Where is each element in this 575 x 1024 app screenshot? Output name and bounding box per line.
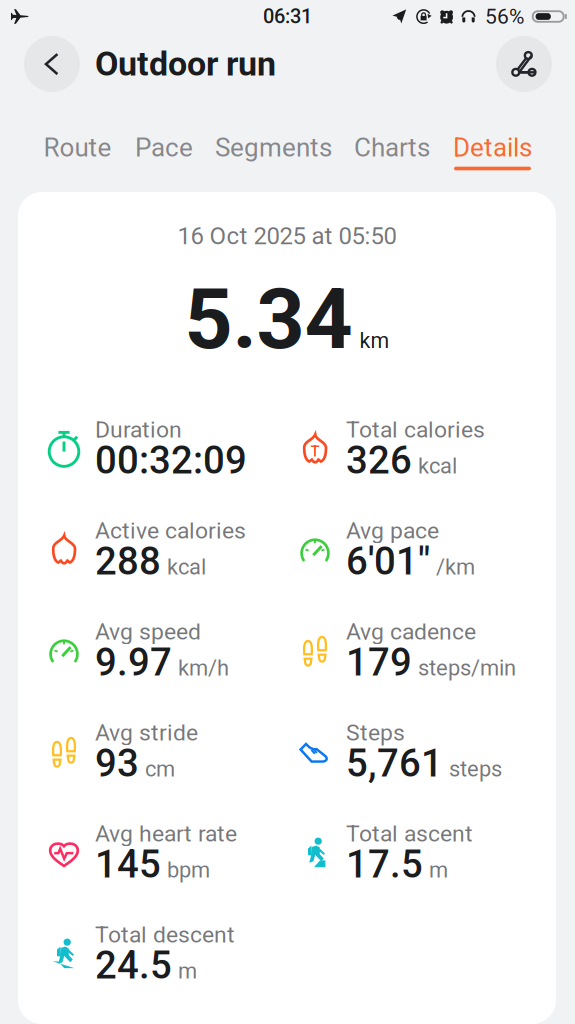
staticText: steps xyxy=(449,756,502,782)
staticText: m xyxy=(429,857,448,883)
button[interactable]: Pace xyxy=(137,136,191,170)
staticText: 00:32:09 xyxy=(95,438,247,483)
staticText: km xyxy=(359,328,389,353)
staticText: Avg cadence xyxy=(346,618,476,645)
staticText: 9.97 xyxy=(95,640,172,685)
staticText: 16 Oct 2025 at 05:50 xyxy=(177,222,396,250)
staticText: Avg heart rate xyxy=(95,820,237,847)
button[interactable]: Route xyxy=(44,136,111,170)
staticText: 24.5 xyxy=(95,943,172,988)
staticText: Total calories xyxy=(346,416,485,443)
staticText: Avg stride xyxy=(95,719,198,746)
staticText: Duration xyxy=(95,416,182,443)
staticText: Segments xyxy=(215,132,332,163)
staticText: 17.5 xyxy=(346,842,423,887)
staticText: kcal xyxy=(167,554,206,580)
staticText: km/h xyxy=(178,655,229,681)
button[interactable]: Charts xyxy=(356,136,428,170)
button[interactable]: Segments xyxy=(217,136,330,170)
staticText: 5.34 xyxy=(184,270,352,368)
staticText: 326 xyxy=(346,438,412,483)
button[interactable]: Details xyxy=(454,136,531,170)
button[interactable]: Back xyxy=(24,36,80,92)
button[interactable]: Share xyxy=(496,36,552,92)
staticText: Total ascent xyxy=(346,820,473,847)
staticText: Avg speed xyxy=(95,618,201,645)
staticText: Steps xyxy=(346,719,405,746)
staticText: kcal xyxy=(418,453,457,479)
staticText: 145 xyxy=(95,842,161,887)
staticText: Details xyxy=(453,132,532,163)
staticText: Route xyxy=(43,132,111,163)
staticText: Active calories xyxy=(95,517,246,544)
staticText: 6'01" xyxy=(346,539,430,584)
staticText: 93 xyxy=(95,741,139,786)
staticText: Pace xyxy=(135,132,193,163)
staticText: T xyxy=(310,443,319,460)
staticText: steps/min xyxy=(418,655,516,681)
staticText: Avg pace xyxy=(346,517,439,544)
staticText: cm xyxy=(145,756,175,782)
staticText: 56% xyxy=(485,4,524,29)
staticText: m xyxy=(178,958,197,984)
staticText: 179 xyxy=(346,640,412,685)
staticText: Outdoor run xyxy=(95,44,276,84)
staticText: 288 xyxy=(95,539,161,584)
staticText: bpm xyxy=(167,857,210,883)
staticText: /km xyxy=(436,554,475,580)
staticText: 5,761 xyxy=(346,741,443,786)
staticText: Total descent xyxy=(95,921,235,948)
staticText: Charts xyxy=(354,132,430,163)
staticText: 06:31 xyxy=(263,5,312,28)
